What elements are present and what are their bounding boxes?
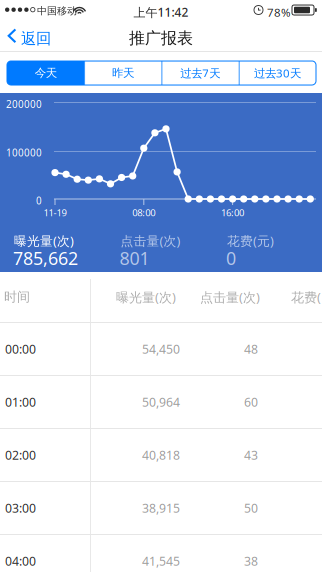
staticText: 昨天 [112,66,134,80]
staticText: 54,450 [142,341,180,357]
staticText: 过去30天 [254,65,301,81]
staticText: 过去7天 [180,65,220,81]
staticText: 花费( [291,288,321,306]
staticText: 41,545 [142,553,180,569]
staticText: 00:00 [5,341,36,357]
staticText: 01:00 [5,394,36,410]
staticText: 100000 [6,146,42,159]
staticText: 点击量(次) [200,288,260,306]
staticText: 花费(元) [227,232,274,249]
staticText: 点击量(次) [120,232,180,249]
staticText: 曝光量(次) [14,232,74,249]
staticText: 11-19 [43,206,66,219]
staticText: 60 [244,394,258,410]
button[interactable]: 过去30天 [239,61,316,85]
staticText: 曝光量(次) [116,288,176,306]
button[interactable]: 今天 [7,61,84,85]
staticText: 43 [244,447,258,463]
staticText: 801 [119,246,149,270]
button[interactable]: 过去7天 [161,61,239,85]
button[interactable]: 昨天 [84,61,161,85]
staticText: 今天 [35,66,57,80]
button[interactable]: 曝光量(次) [14,232,120,268]
staticText: 38,915 [142,500,180,516]
staticText: 08:00 [132,206,155,219]
staticText: 0 [226,246,236,270]
button[interactable]: 点击量(次) [120,232,227,268]
staticText: 50,964 [142,394,180,410]
staticText: 02:00 [5,447,36,463]
staticText: 38 [244,553,258,569]
staticText: 返回 [21,29,51,48]
staticText: 78% [267,4,291,20]
button[interactable]: 花费(元) [227,232,322,268]
staticText: 50 [244,500,258,516]
staticText: 03:00 [5,500,36,516]
staticText: 16:00 [221,206,244,219]
staticText: 48 [244,341,258,357]
staticText: 时间 [4,289,30,305]
staticText: 04:00 [5,553,36,569]
staticText: 40,818 [142,447,180,463]
staticText: 推广报表 [129,28,193,48]
staticText: 785,662 [13,246,78,270]
staticText: 中国移动 [37,4,77,17]
staticText: 200000 [6,97,42,111]
staticText: 0 [36,194,42,207]
staticText: 上午11:42 [133,4,188,20]
button[interactable]: 返回 [0,20,62,52]
